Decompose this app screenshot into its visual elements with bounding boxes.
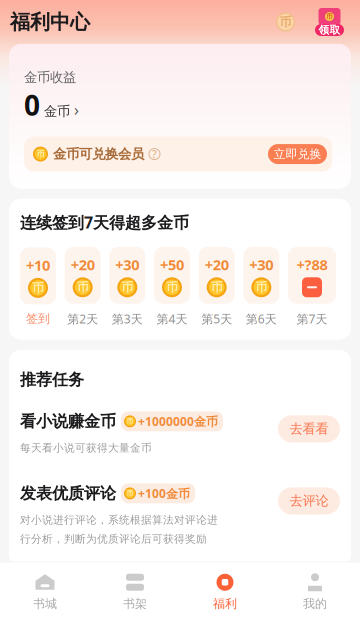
button[interactable]: +20: [199, 247, 235, 327]
button[interactable]: +?88: [288, 247, 336, 327]
staticText: ?: [152, 147, 157, 161]
staticText: 金币收益: [24, 69, 76, 85]
staticText: 币: [32, 280, 44, 295]
button[interactable]: 福利: [180, 562, 270, 620]
staticText: +20: [205, 255, 229, 274]
staticText: 币: [279, 15, 291, 29]
staticText: 币: [77, 280, 89, 295]
staticText: 我的: [303, 596, 327, 611]
staticText: 0: [24, 86, 40, 124]
button[interactable]: 金币: [276, 9, 295, 35]
button[interactable]: +50: [154, 247, 190, 327]
staticText: 币: [255, 280, 267, 295]
button[interactable]: 领取奖励: [295, 8, 344, 36]
staticText: +100金币: [138, 485, 190, 501]
staticText: 福利中心: [10, 10, 90, 34]
staticText: 去评论: [289, 493, 328, 509]
staticText: +10: [26, 255, 50, 275]
staticText: +?88: [296, 255, 327, 274]
staticText: 金币可兑换会员: [53, 146, 144, 162]
button[interactable]: +10: [20, 247, 56, 326]
staticText: 推荐任务: [20, 370, 84, 389]
staticText: 去看看: [289, 421, 328, 437]
staticText: 第3天: [112, 311, 143, 327]
button[interactable]: 去评论: [278, 487, 340, 514]
staticText: +30: [115, 255, 139, 274]
staticText: ›: [74, 99, 79, 120]
staticText: +1000000金币: [138, 413, 218, 429]
staticText: +20: [71, 255, 95, 274]
staticText: 币: [126, 417, 133, 425]
staticText: 连续签到7天得超多金币: [20, 212, 189, 233]
staticText: 书架: [123, 596, 147, 611]
staticText: 立即兑换: [273, 147, 321, 161]
staticText: 发表优质评论: [20, 484, 116, 503]
staticText: 第6天: [246, 311, 277, 327]
staticText: +50: [160, 255, 184, 274]
button[interactable]: 去看看: [278, 415, 340, 442]
staticText: 币: [126, 489, 133, 497]
staticText: 币: [166, 280, 178, 295]
button[interactable]: 我的: [270, 562, 360, 620]
staticText: 福利: [213, 596, 237, 611]
staticText: 对小说进行评论，系统根据算法对评论进行分析，判断为优质评论后可获得奖励: [20, 513, 218, 546]
button[interactable]: 书架: [90, 562, 180, 620]
staticText: 币: [121, 280, 133, 295]
staticText: 第5天: [201, 311, 232, 327]
staticText: 签到: [26, 311, 50, 326]
staticText: 第4天: [156, 311, 187, 327]
button[interactable]: 书城: [0, 562, 90, 620]
staticText: 领取: [318, 23, 340, 36]
staticText: 书城: [33, 596, 57, 611]
button[interactable]: +30: [109, 247, 145, 327]
staticText: 第7天: [296, 311, 327, 327]
staticText: 币: [211, 280, 223, 295]
staticText: 看小说赚金币: [20, 411, 116, 431]
staticText: 币: [36, 149, 44, 159]
staticText: +30: [249, 255, 273, 274]
button[interactable]: +30: [243, 247, 279, 327]
staticText: 金币: [44, 103, 70, 120]
staticText: 每天看小说可获得大量金币: [20, 441, 152, 454]
staticText: 第2天: [67, 311, 98, 327]
button[interactable]: +20: [65, 247, 101, 327]
button[interactable]: 立即兑换: [268, 144, 327, 164]
staticText: 币: [326, 12, 333, 21]
